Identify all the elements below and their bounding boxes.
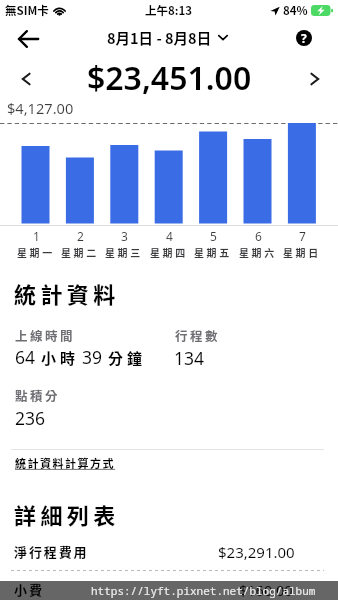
staticText: 統計資料 xyxy=(14,277,120,309)
staticText: 星期日 xyxy=(283,245,321,259)
staticText: 6 xyxy=(255,228,262,244)
button[interactable]: 統計資料計算方式 xyxy=(15,455,115,471)
staticText: 8月1日 - 8月8日 xyxy=(107,27,212,48)
staticText: 詳細列表 xyxy=(14,498,120,530)
button[interactable]: Help xyxy=(296,30,312,46)
button[interactable]: Previous period xyxy=(13,67,37,91)
staticText: https://lyft.pixnet.net/blog/album xyxy=(91,583,316,598)
staticText: 2 xyxy=(77,228,84,244)
staticText: 星期一 xyxy=(17,245,55,259)
staticText: 點積分 xyxy=(15,386,61,404)
staticText: 上午8:13 xyxy=(145,2,193,19)
staticText: 上線時間 xyxy=(15,326,76,344)
staticText: 5 xyxy=(210,228,217,244)
staticText: 星期三 xyxy=(105,245,143,259)
staticText: ? xyxy=(301,30,307,46)
staticText: $23,291.00 xyxy=(218,542,295,562)
staticText: 134 xyxy=(174,346,205,370)
staticText: $160.00 xyxy=(239,580,293,600)
staticText: 星期五 xyxy=(194,245,232,259)
staticText: 星期四 xyxy=(150,245,188,259)
staticText: 星期二 xyxy=(61,245,99,259)
staticText: 淨行程費用 xyxy=(14,542,89,561)
staticText: 1 xyxy=(33,228,40,244)
staticText: 236 xyxy=(15,406,46,430)
staticText: 84% xyxy=(283,2,308,19)
button[interactable]: 8月1日 - 8月8日 xyxy=(105,27,230,48)
staticText: 7 xyxy=(299,228,306,244)
staticText: 星期六 xyxy=(239,245,277,259)
staticText: 無SIM卡 xyxy=(5,2,49,19)
staticText: 行程數 xyxy=(175,326,221,344)
staticText: 小費 xyxy=(14,580,44,599)
staticText: 小時 xyxy=(41,347,80,369)
staticText: $4,127.00 xyxy=(7,98,74,118)
staticText: 3 xyxy=(121,228,128,244)
button[interactable]: Next period xyxy=(304,67,328,91)
staticText: 4 xyxy=(166,228,173,244)
button[interactable]: Back xyxy=(12,23,44,55)
staticText: 39 xyxy=(82,345,103,369)
staticText: 分鐘 xyxy=(108,347,147,369)
staticText: $23,451.00 xyxy=(87,56,252,98)
staticText: 64 xyxy=(15,345,36,369)
